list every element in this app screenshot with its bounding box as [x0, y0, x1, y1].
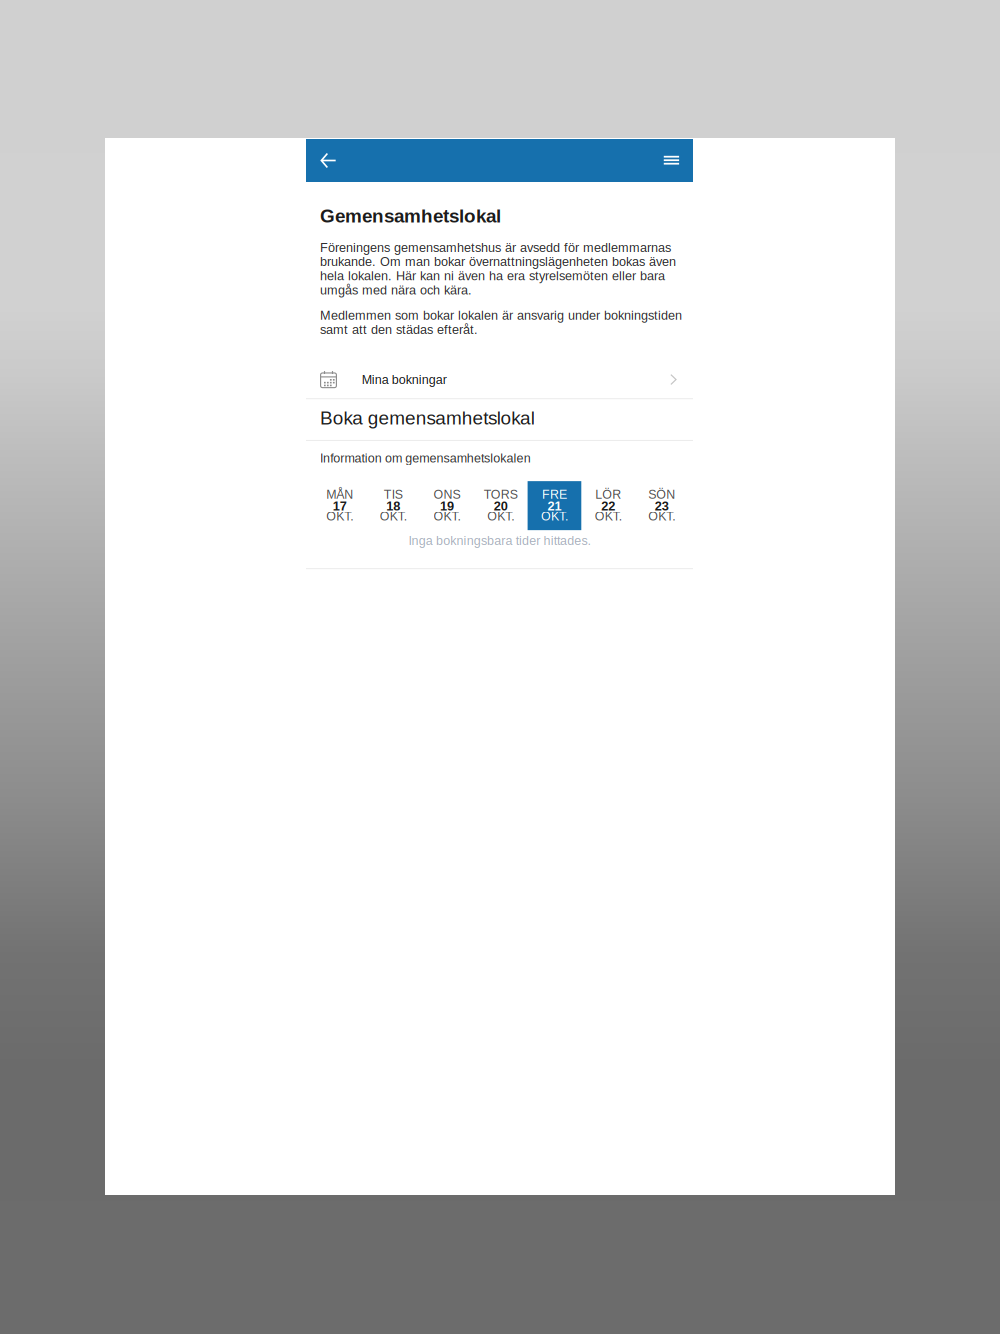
button[interactable]: MÅN — [313, 481, 366, 530]
staticText: 19 — [440, 499, 454, 513]
staticText: TIS — [384, 488, 403, 501]
staticText: Information om gemensamhetslokalen — [320, 451, 531, 465]
staticText: OKT. — [541, 509, 568, 523]
staticText: OKT. — [380, 509, 407, 523]
staticText: OKT. — [326, 509, 353, 523]
button[interactable]: Mina bokningar — [306, 361, 693, 398]
button[interactable]: Back — [306, 139, 350, 182]
staticText: Inga bokningsbara tider hittades. — [408, 534, 591, 548]
staticText: Medlemmen som bokar lokalen är ansvarig … — [320, 308, 682, 337]
staticText: Mina bokningar — [362, 372, 447, 386]
staticText: OKT. — [487, 509, 514, 523]
staticText: LÖR — [595, 488, 621, 501]
staticText: OKT. — [434, 509, 461, 523]
staticText: SÖN — [648, 488, 675, 501]
button[interactable]: SÖN — [635, 481, 689, 530]
staticText: FRE — [542, 488, 567, 501]
staticText: OKT. — [595, 509, 622, 523]
staticText: ONS — [434, 488, 461, 501]
button[interactable]: FRE — [528, 481, 581, 530]
staticText: TORS — [484, 488, 518, 501]
staticText: 18 — [386, 499, 400, 513]
staticText: Boka gemensamhetslokal — [320, 407, 535, 429]
staticText: Gemensamhetslokal — [320, 205, 501, 226]
staticText: OKT. — [648, 509, 675, 523]
staticText: 23 — [655, 499, 669, 513]
button[interactable]: TORS — [474, 481, 528, 530]
button[interactable]: Menu — [649, 139, 693, 182]
staticText: 21 — [547, 499, 561, 513]
button[interactable]: TIS — [366, 481, 420, 530]
staticText: MÅN — [326, 488, 353, 501]
button[interactable]: ONS — [420, 481, 474, 530]
staticText: Föreningens gemensamhetshus är avsedd fö… — [320, 240, 676, 297]
staticText: 20 — [494, 499, 508, 513]
staticText: 17 — [333, 499, 347, 513]
button[interactable]: LÖR — [581, 481, 635, 530]
staticText: 22 — [601, 499, 615, 513]
